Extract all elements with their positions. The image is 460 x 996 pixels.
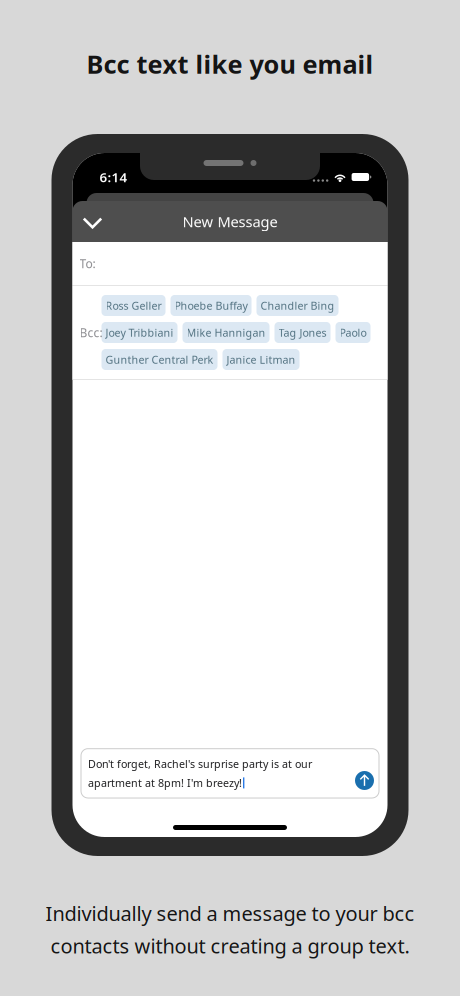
- button[interactable]: Joey Tribbiani: [101, 322, 177, 343]
- staticText: Chandler Bing: [260, 298, 334, 313]
- button[interactable]: Chandler Bing: [256, 295, 338, 316]
- staticText: Ross Geller: [105, 298, 161, 313]
- button[interactable]: Gunther Central Perk: [101, 349, 217, 370]
- staticText: Individually send a message to your bcc: [45, 900, 414, 927]
- button[interactable]: Ross Geller: [101, 295, 165, 316]
- staticText: contacts without creating a group text.: [50, 933, 409, 959]
- staticText: Janice Litman: [226, 352, 295, 367]
- staticText: Phoebe Buffay: [174, 298, 247, 313]
- staticText: To:: [79, 255, 95, 271]
- button[interactable]: Close: [72, 201, 112, 242]
- staticText: Bcc:: [79, 324, 102, 340]
- staticText: apartment at 8pm! I'm breezy!: [88, 776, 242, 790]
- button[interactable]: Paolo: [335, 322, 370, 343]
- staticText: Paolo: [339, 325, 366, 340]
- staticText: Mike Hannigan: [186, 325, 265, 340]
- button[interactable]: Phoebe Buffay: [170, 295, 251, 316]
- button[interactable]: Mike Hannigan: [182, 322, 269, 343]
- staticText: Bcc text like you email: [86, 47, 373, 81]
- button[interactable]: Send: [355, 771, 374, 790]
- staticText: Don't forget, Rachel's surprise party is…: [88, 757, 312, 771]
- staticText: New Message: [182, 212, 277, 231]
- staticText: 6:14: [99, 168, 127, 186]
- staticText: Joey Tribbiani: [105, 325, 173, 340]
- staticText: Gunther Central Perk: [105, 352, 213, 367]
- staticText: Tag Jones: [278, 325, 326, 340]
- button[interactable]: Tag Jones: [274, 322, 330, 343]
- button[interactable]: Janice Litman: [222, 349, 299, 370]
